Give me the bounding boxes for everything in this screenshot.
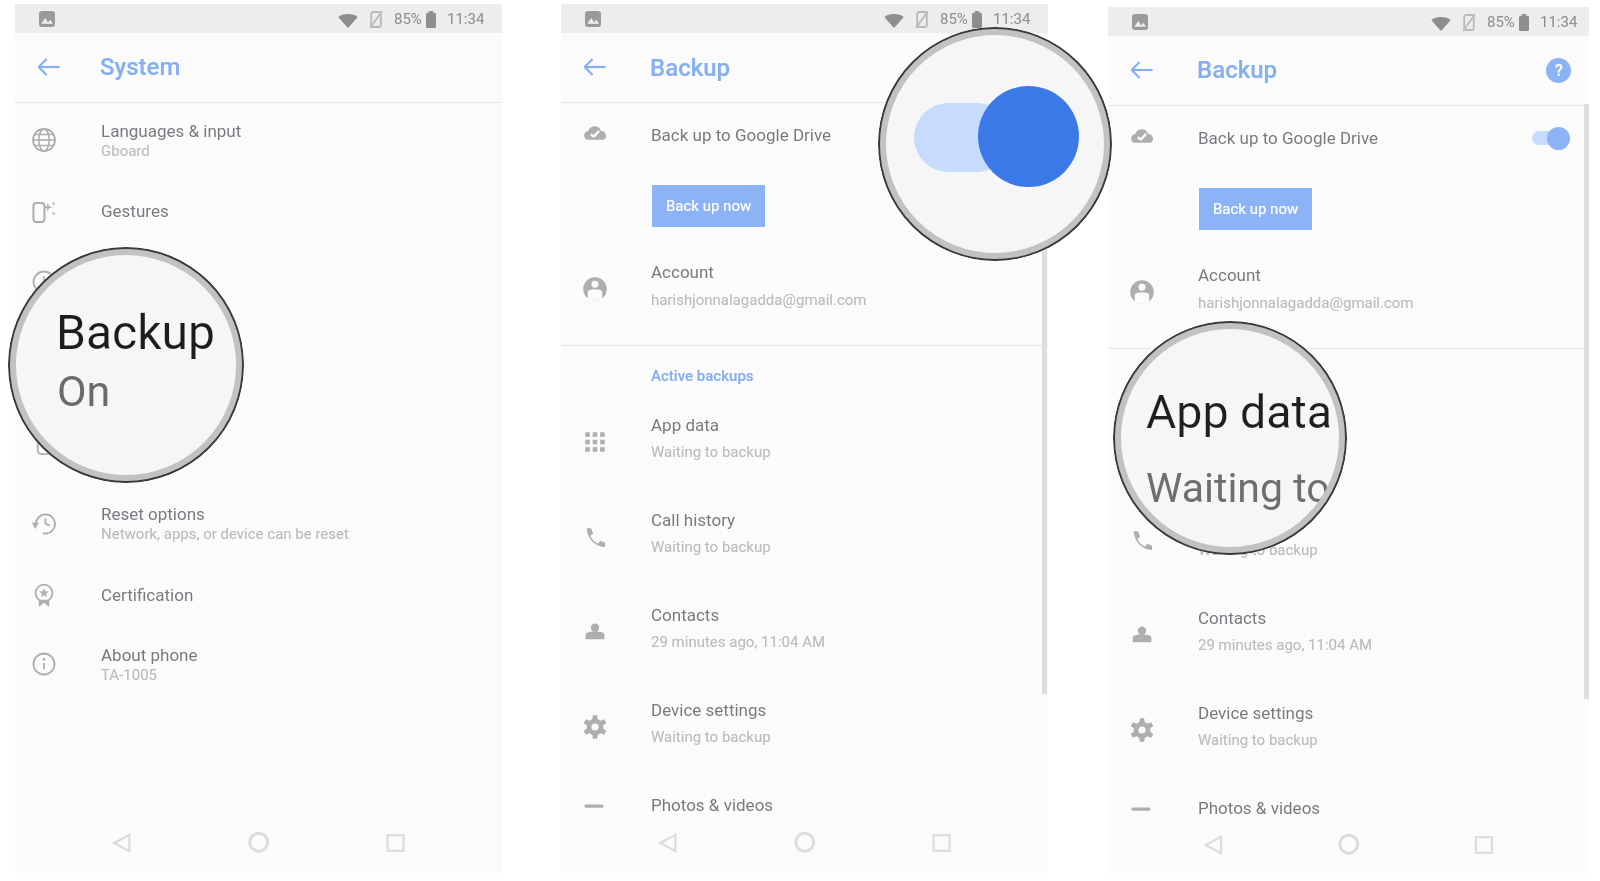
button[interactable]: Back (1118, 46, 1166, 94)
staticText: Waiting to backup (651, 443, 771, 461)
staticText: 85% (1487, 13, 1515, 31)
staticText: Back up now (666, 197, 752, 215)
staticText: Date & time (101, 263, 189, 283)
staticText: 11:34 (993, 10, 1031, 28)
staticText: App data (1198, 418, 1267, 438)
button[interactable]: Device settings (561, 677, 1048, 772)
button[interactable]: Back up to Google Drive (1108, 104, 1589, 172)
staticText: On (57, 366, 111, 416)
staticText: harishjonnalagadda@gmail.com (651, 291, 867, 309)
staticText: Back up to Google Drive (651, 125, 832, 145)
staticText: Photos & videos (651, 795, 774, 815)
staticText: Gboard (101, 142, 150, 160)
button[interactable]: Back up to Google Drive (561, 101, 1048, 169)
button[interactable]: Device settings (1108, 680, 1589, 775)
staticText: Waiting to backup (1198, 541, 1318, 559)
button[interactable]: About phone (15, 620, 502, 700)
staticText: Reset options (101, 504, 205, 524)
button[interactable]: App data (1108, 395, 1589, 490)
staticText: Call history (651, 510, 736, 530)
staticText: 85% (940, 10, 968, 28)
staticText: Device settings (651, 700, 767, 720)
button[interactable]: Photos & videos (561, 772, 1048, 832)
staticText: Contacts (1198, 608, 1267, 628)
staticText: Android 8.1.0 (101, 445, 191, 463)
staticText: System (100, 53, 181, 81)
button[interactable]: Languages & input (15, 96, 502, 176)
staticText: 29 minutes ago, 11:04 AM (1198, 636, 1373, 654)
staticText: harishjonnalagadda@gmail.com (1198, 294, 1414, 312)
staticText: Account (651, 262, 714, 282)
staticText: Photos & videos (1198, 798, 1321, 818)
button[interactable]: Date & time (15, 238, 502, 318)
button[interactable]: Contacts (1108, 585, 1589, 680)
staticText: Waiting to backup (651, 538, 771, 556)
staticText: App data (651, 415, 720, 435)
staticText: Gestures (101, 201, 169, 221)
staticText: Backup (1197, 56, 1278, 84)
staticText: App data (1146, 385, 1333, 439)
button[interactable]: App data (561, 392, 1048, 487)
staticText: Backup (101, 343, 158, 363)
button[interactable]: Account (561, 244, 1048, 328)
staticText: ? (1555, 61, 1563, 80)
staticText: About phone (101, 645, 198, 665)
button[interactable]: Account (1108, 247, 1589, 331)
staticText: Active backups (651, 367, 754, 385)
button[interactable]: Call history (561, 487, 1048, 582)
button[interactable]: Backup (15, 318, 502, 398)
staticText: Contacts (651, 605, 720, 625)
button[interactable]: Back up to Google Drive toggle (1524, 120, 1576, 156)
button[interactable]: Back up now (1199, 188, 1312, 230)
staticText: Back up to Google Drive (1198, 128, 1379, 148)
staticText: Account (1198, 265, 1261, 285)
button[interactable]: Certification (15, 558, 502, 620)
staticText: Device settings (1198, 703, 1314, 723)
staticText: Languages & input (101, 121, 242, 141)
staticText: 29 minutes ago, 11:04 AM (651, 633, 826, 651)
button[interactable]: Contacts (561, 582, 1048, 677)
button[interactable]: Photos & videos (1108, 775, 1589, 835)
button[interactable]: Back (571, 43, 619, 91)
staticText: Certification (101, 585, 194, 605)
staticText: System update (101, 424, 214, 444)
button[interactable]: Back (25, 43, 73, 91)
staticText: 11:34 (1540, 13, 1578, 31)
staticText: Network, apps, or device can be reset (101, 525, 349, 543)
button[interactable]: Help (1538, 50, 1578, 90)
staticText: Waiting to backup (651, 728, 771, 746)
button[interactable]: Gestures (15, 176, 502, 238)
staticText: Waiting to backup (1198, 731, 1318, 749)
staticText: TA-1005 (101, 666, 158, 684)
staticText: 11:34 (447, 10, 485, 28)
staticText: Waiting to (1146, 464, 1330, 512)
staticText: Backup (56, 304, 215, 360)
staticText: 85% (394, 10, 422, 28)
button[interactable]: Reset options (15, 478, 502, 558)
button[interactable]: Back up now (652, 185, 765, 227)
staticText: Back up now (1213, 200, 1299, 218)
staticText: Backup (650, 54, 731, 82)
button[interactable]: Call history (1108, 490, 1589, 585)
button[interactable]: System update (15, 398, 502, 478)
